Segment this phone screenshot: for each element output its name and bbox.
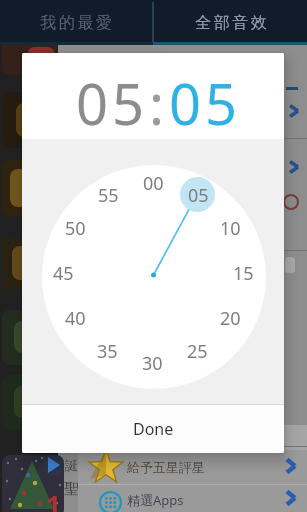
staticText: 50 [65,216,86,240]
staticText: 35 [97,339,118,363]
staticText: 精選Apps [127,491,184,509]
staticText: 05 [169,65,242,141]
staticText: Done [133,418,174,440]
button[interactable]: Done [22,405,284,453]
staticText: 20 [220,306,241,330]
staticText: 55 [98,183,119,207]
staticText: 40 [65,306,86,330]
staticText: 10 [220,216,241,240]
staticText: 全部音效 [194,13,268,33]
staticText: 1 [46,487,61,512]
staticText: : [149,65,169,141]
staticText: 25 [187,339,208,363]
button[interactable]: 全部音效 [155,0,307,45]
staticText: 聖 [64,480,79,499]
staticText: 00 [143,171,164,195]
staticText: 我的最愛 [39,13,113,33]
staticText: 05 [188,183,209,207]
button[interactable]: 我的最愛 [0,0,152,45]
button[interactable]: 給予五星評星 [127,458,257,476]
button[interactable]: 精選Apps [127,491,257,509]
staticText: 給予五星評星 [127,459,205,475]
staticText: 05 [76,65,149,141]
staticText: 誕 [65,457,78,473]
staticText: 45 [53,261,74,285]
staticText: 30 [142,351,163,375]
staticText: 15 [233,261,254,285]
